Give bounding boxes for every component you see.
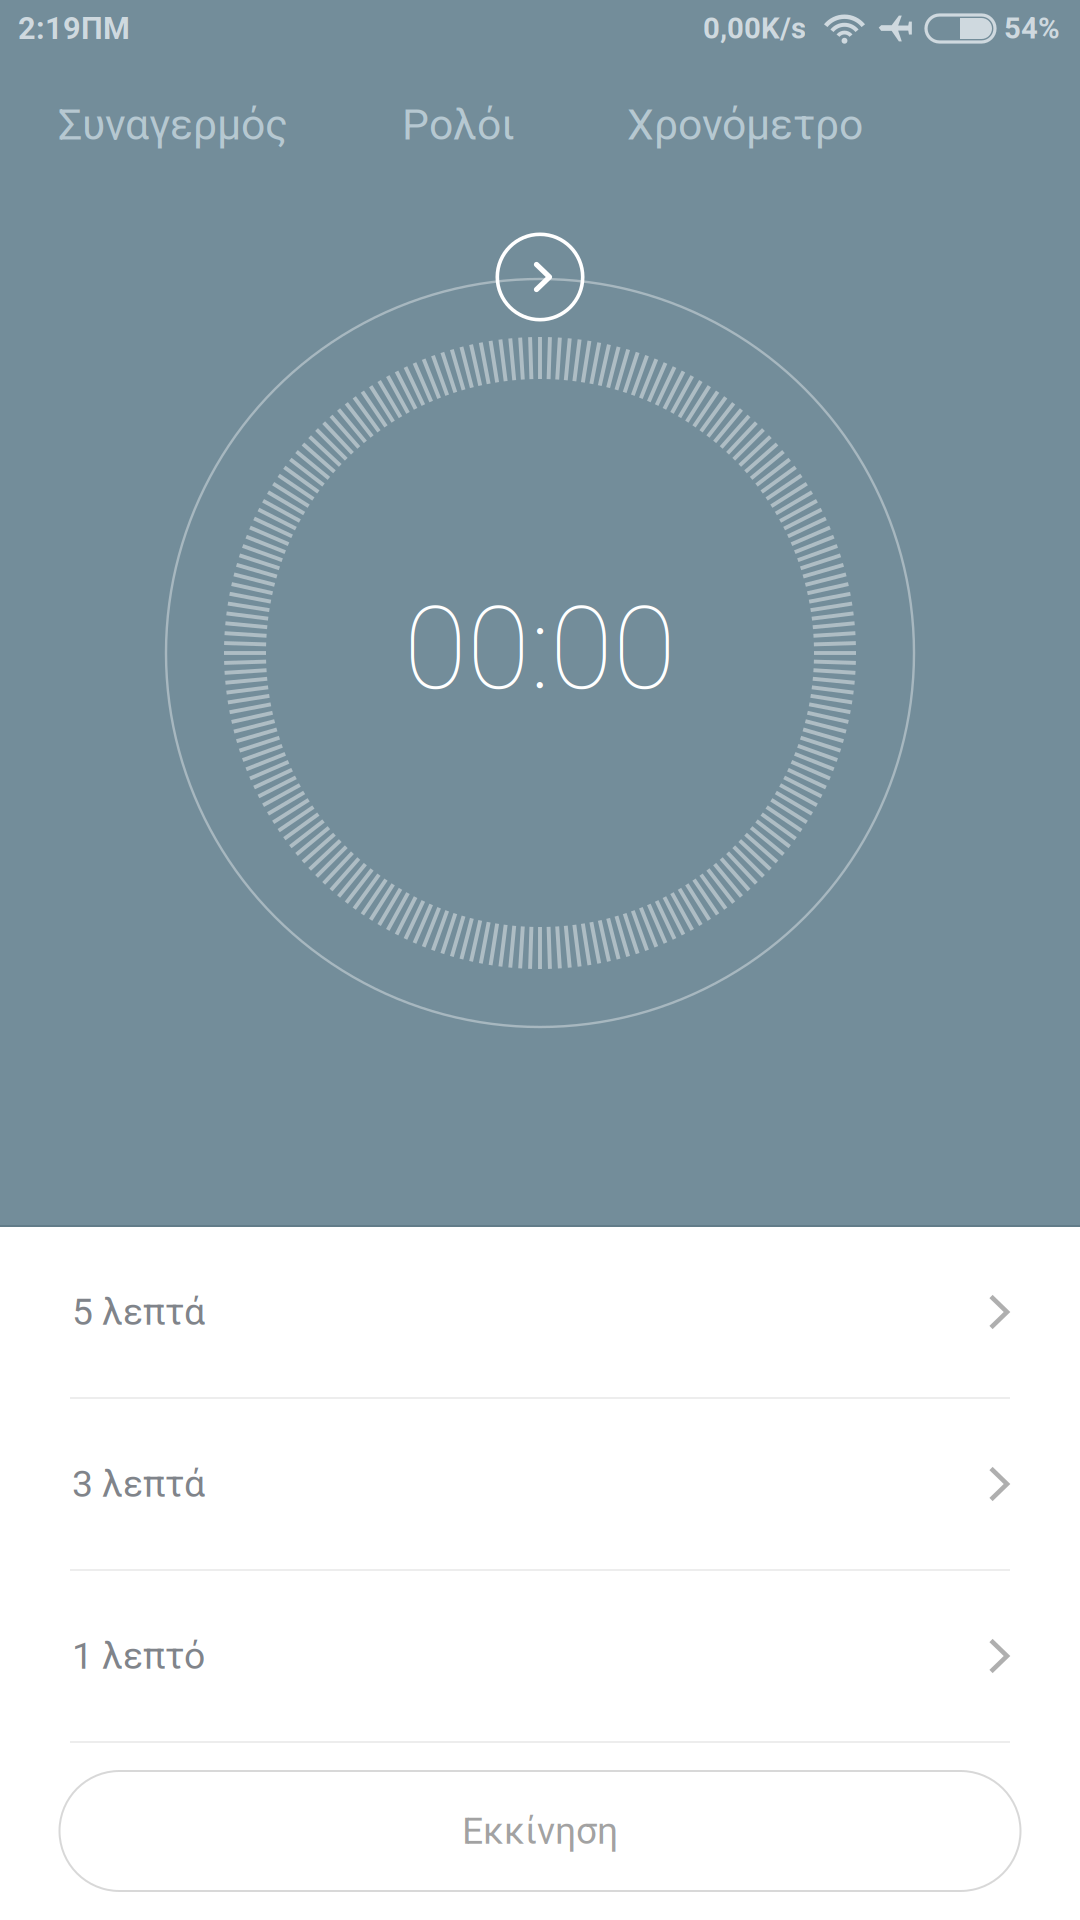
staticText: 0,00K/s: [703, 11, 806, 46]
staticText: Χρονόμετρο: [627, 100, 863, 150]
button[interactable]: 1 λεπτό: [0, 1571, 1080, 1741]
staticText: 54%: [1004, 11, 1060, 46]
staticText: 5 λεπτά: [72, 1290, 205, 1334]
staticText: 1 λεπτό: [72, 1634, 205, 1678]
staticText: Εκκίνηση: [462, 1809, 618, 1853]
button[interactable]: 3 λεπτά: [0, 1399, 1080, 1569]
staticText: Ρολόι: [402, 100, 515, 150]
button[interactable]: 5 λεπτά: [0, 1227, 1080, 1397]
staticText: 2:19ΠΜ: [18, 10, 130, 46]
staticText: 00:00: [404, 582, 676, 716]
staticText: 3 λεπτά: [72, 1462, 205, 1506]
button[interactable]: Επόμενο: [494, 231, 586, 323]
button[interactable]: Εκκίνηση: [59, 1771, 1020, 1891]
staticText: Συναγερμός: [58, 100, 288, 150]
